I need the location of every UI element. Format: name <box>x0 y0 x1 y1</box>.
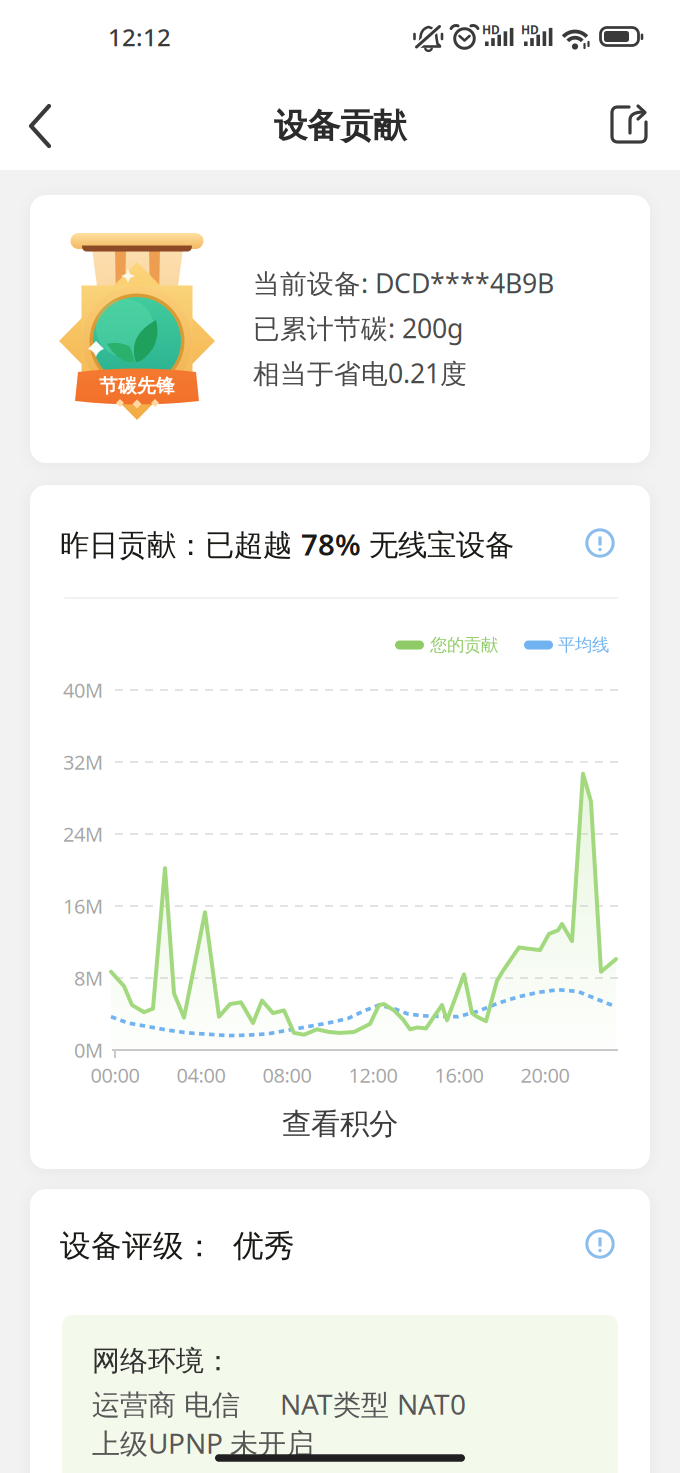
staticText: HD <box>482 21 500 37</box>
staticText: 节碳先锋 <box>99 374 175 397</box>
staticText: 20:00 <box>520 1062 569 1088</box>
staticText: 00:00 <box>90 1062 139 1088</box>
staticText: 8M <box>74 965 103 991</box>
staticText: 04:00 <box>176 1062 225 1088</box>
staticText: 昨日贡献：已超越 78% 无线宝设备 <box>60 524 514 563</box>
staticText: 设备评级： 优秀 <box>60 1227 295 1265</box>
staticText: 已累计节碳: 200g <box>253 310 463 346</box>
staticText: 运营商 电信 NAT类型 NAT0 <box>92 1385 466 1423</box>
staticText: 24M <box>63 821 103 847</box>
button[interactable]: Info <box>585 1229 615 1259</box>
staticText: 0M <box>74 1037 103 1063</box>
staticText: 当前设备: DCD****4B9B <box>253 265 554 301</box>
staticText: 您的贡献 <box>430 634 498 656</box>
button[interactable]: 查看积分 <box>240 1099 440 1149</box>
staticText: 查看积分 <box>282 1106 398 1142</box>
staticText: 40M <box>63 677 103 703</box>
staticText: 设备贡献 <box>274 105 406 146</box>
staticText: 16M <box>63 893 103 919</box>
staticText: 相当于省电0.21度 <box>253 355 467 391</box>
staticText: HD <box>521 21 539 37</box>
staticText: 12:12 <box>108 21 171 53</box>
button[interactable]: Info <box>585 528 615 558</box>
staticText: 32M <box>63 749 103 775</box>
staticText: 网络环境： <box>92 1344 232 1378</box>
button[interactable]: Back <box>19 98 63 154</box>
staticText: 上级UPNP 未开启 <box>92 1424 314 1462</box>
staticText: 平均线 <box>558 634 609 656</box>
staticText: 12:00 <box>348 1062 397 1088</box>
button[interactable]: Share <box>605 99 653 151</box>
staticText: 08:00 <box>262 1062 311 1088</box>
staticText: 16:00 <box>434 1062 483 1088</box>
